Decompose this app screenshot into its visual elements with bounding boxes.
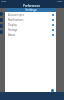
staticText: Account sync — [8, 13, 24, 17]
button[interactable]: Add — [51, 89, 54, 92]
staticText: Storage — [8, 28, 18, 32]
button[interactable]: Account sync — [5, 12, 56, 17]
button[interactable]: Notifications — [5, 17, 56, 22]
staticText: Settings — [25, 8, 37, 12]
staticText: 12:30 — [1, 0, 7, 3]
staticText: Notifications — [8, 18, 24, 22]
staticText: 100% — [57, 0, 63, 3]
staticText: About — [8, 33, 16, 37]
button[interactable]: Storage — [5, 27, 56, 32]
button[interactable]: About — [5, 32, 56, 37]
staticText: Preferences — [23, 4, 41, 8]
button[interactable]: Settings — [5, 8, 56, 12]
button[interactable]: Display — [5, 22, 56, 27]
staticText: Display — [8, 23, 17, 27]
